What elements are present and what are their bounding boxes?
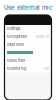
staticText: Input level (7, 42, 24, 47)
staticText: Built-in (36, 34, 49, 39)
staticText: Monitoring (7, 66, 26, 71)
staticText: Noise filter (7, 58, 26, 63)
staticText: Settings (6, 26, 20, 31)
staticText: On (44, 66, 49, 71)
staticText: Use external mic (4, 4, 52, 11)
staticText: Microphone (7, 34, 27, 39)
